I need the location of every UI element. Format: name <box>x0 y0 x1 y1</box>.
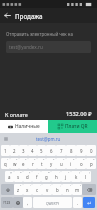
button[interactable]: ? <box>72 184 82 195</box>
button[interactable]: 6 <box>46 158 56 169</box>
staticText: 9 <box>83 158 85 161</box>
staticText: 3 <box>25 158 27 161</box>
button[interactable]: Плати QR <box>48 120 97 133</box>
staticText: $ <box>29 171 31 174</box>
button[interactable]: : <box>42 184 52 195</box>
button[interactable]: 1 <box>1 158 10 169</box>
staticText: y <box>50 161 53 167</box>
button[interactable]: 0 <box>86 145 96 156</box>
staticText: " <box>30 184 31 187</box>
button[interactable]: $ <box>23 171 32 182</box>
staticText: a <box>8 174 11 180</box>
staticText: e <box>22 161 25 167</box>
staticText: . <box>77 200 79 206</box>
button[interactable]: test@yandex.ru <box>6 41 91 53</box>
staticText: , <box>27 200 29 206</box>
button[interactable]: # <box>14 171 23 182</box>
button[interactable]: 9 <box>76 158 86 169</box>
button[interactable]: 7 <box>56 158 66 169</box>
staticText: 1 <box>4 148 7 154</box>
staticText: : <box>50 184 51 187</box>
staticText: ) <box>89 171 90 174</box>
staticText: 7 <box>60 148 63 154</box>
button[interactable]: - <box>51 171 61 182</box>
staticText: @ <box>10 171 13 174</box>
staticText: 9 <box>80 148 83 154</box>
staticText: v <box>46 187 49 193</box>
button[interactable]: ; <box>52 184 62 195</box>
button[interactable]: & <box>41 171 51 182</box>
button[interactable]: 7 <box>56 145 66 156</box>
button[interactable]: 1 <box>1 145 10 156</box>
staticText: g <box>45 174 48 180</box>
staticText: b <box>56 187 59 193</box>
button[interactable]: Ввод <box>83 197 95 208</box>
staticText: 2 <box>13 148 16 154</box>
button[interactable]: QWERTY <box>33 197 72 208</box>
staticText: + <box>68 171 70 174</box>
button[interactable]: 9 <box>76 145 86 156</box>
button[interactable]: ' <box>32 184 42 195</box>
staticText: 3 <box>22 148 25 154</box>
staticText: n <box>66 187 69 193</box>
button[interactable]: Наличные <box>0 120 48 133</box>
button[interactable]: 8 <box>66 145 76 156</box>
button[interactable]: 5 <box>37 158 46 169</box>
staticText: m <box>75 187 80 193</box>
staticText: & <box>48 171 50 174</box>
button[interactable]: 5 <box>37 145 46 156</box>
button[interactable]: " <box>23 184 32 195</box>
staticText: # <box>20 171 22 174</box>
button[interactable]: 4 <box>28 158 37 169</box>
button[interactable]: ( <box>71 171 81 182</box>
button[interactable]: 3 <box>19 158 28 169</box>
staticText: 0 <box>93 158 95 161</box>
staticText: 7 <box>63 158 65 161</box>
button[interactable]: 6 <box>46 145 56 156</box>
button[interactable]: 0 <box>86 158 96 169</box>
button[interactable]: . <box>73 197 82 208</box>
staticText: z <box>17 187 20 193</box>
button[interactable]: test@pm.ru <box>12 133 85 144</box>
staticText: ; <box>60 184 61 187</box>
staticText: c <box>36 187 39 193</box>
staticText: Продажа <box>15 12 43 20</box>
staticText: i <box>70 161 72 167</box>
staticText: ' <box>40 184 41 187</box>
staticText: p <box>90 161 93 167</box>
staticText: 4 <box>31 148 34 154</box>
staticText: ? <box>80 184 81 187</box>
button[interactable]: 2 <box>10 158 19 169</box>
button[interactable]: 8 <box>66 158 76 169</box>
button[interactable]: 4 <box>28 145 37 156</box>
staticText: 6 <box>50 148 53 154</box>
button[interactable]: Удалить <box>82 184 96 195</box>
staticText: - <box>59 171 60 174</box>
button[interactable]: ! <box>62 184 72 195</box>
button[interactable]: + <box>61 171 71 182</box>
staticText: 0 <box>90 148 93 154</box>
staticText: Наличные <box>15 123 40 130</box>
button[interactable]: Эмодзи <box>13 197 23 208</box>
button[interactable]: 2 <box>10 145 19 156</box>
staticText: QWERTY <box>46 201 60 205</box>
staticText: f <box>36 174 38 180</box>
staticText: x <box>26 187 29 193</box>
staticText: ?123 <box>3 200 11 205</box>
button[interactable]: Назад <box>0 8 15 23</box>
staticText: u <box>60 161 63 167</box>
staticText: 1532.00 ₽ <box>66 110 92 118</box>
button[interactable]: * <box>14 184 23 195</box>
button[interactable]: _ <box>32 171 41 182</box>
button[interactable]: @ <box>5 171 14 182</box>
staticText: t <box>41 161 43 167</box>
staticText: 5 <box>43 158 45 161</box>
button[interactable]: Символы <box>1 197 13 208</box>
button[interactable]: Shift <box>1 184 14 195</box>
button[interactable]: Меню клавиатуры <box>0 133 12 144</box>
button[interactable]: 3 <box>19 145 28 156</box>
button[interactable]: ) <box>81 171 91 182</box>
staticText: Отправить электронный чек на <box>6 31 73 37</box>
staticText: o <box>80 161 83 167</box>
button[interactable]: , <box>23 197 32 208</box>
